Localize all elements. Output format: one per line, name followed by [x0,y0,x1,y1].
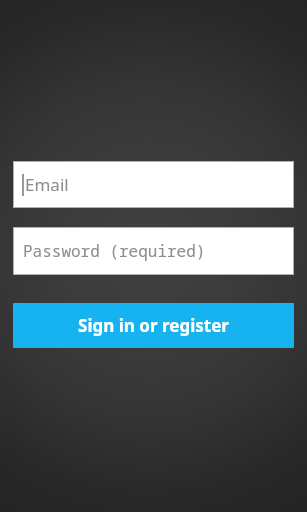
button[interactable]: Password input field [13,227,294,275]
staticText: Sign in or register [78,314,229,337]
button[interactable]: Email input field [13,161,294,208]
staticText: Email [25,173,69,196]
button[interactable]: Sign in or register [13,303,294,348]
staticText: Password (required) [23,240,206,262]
